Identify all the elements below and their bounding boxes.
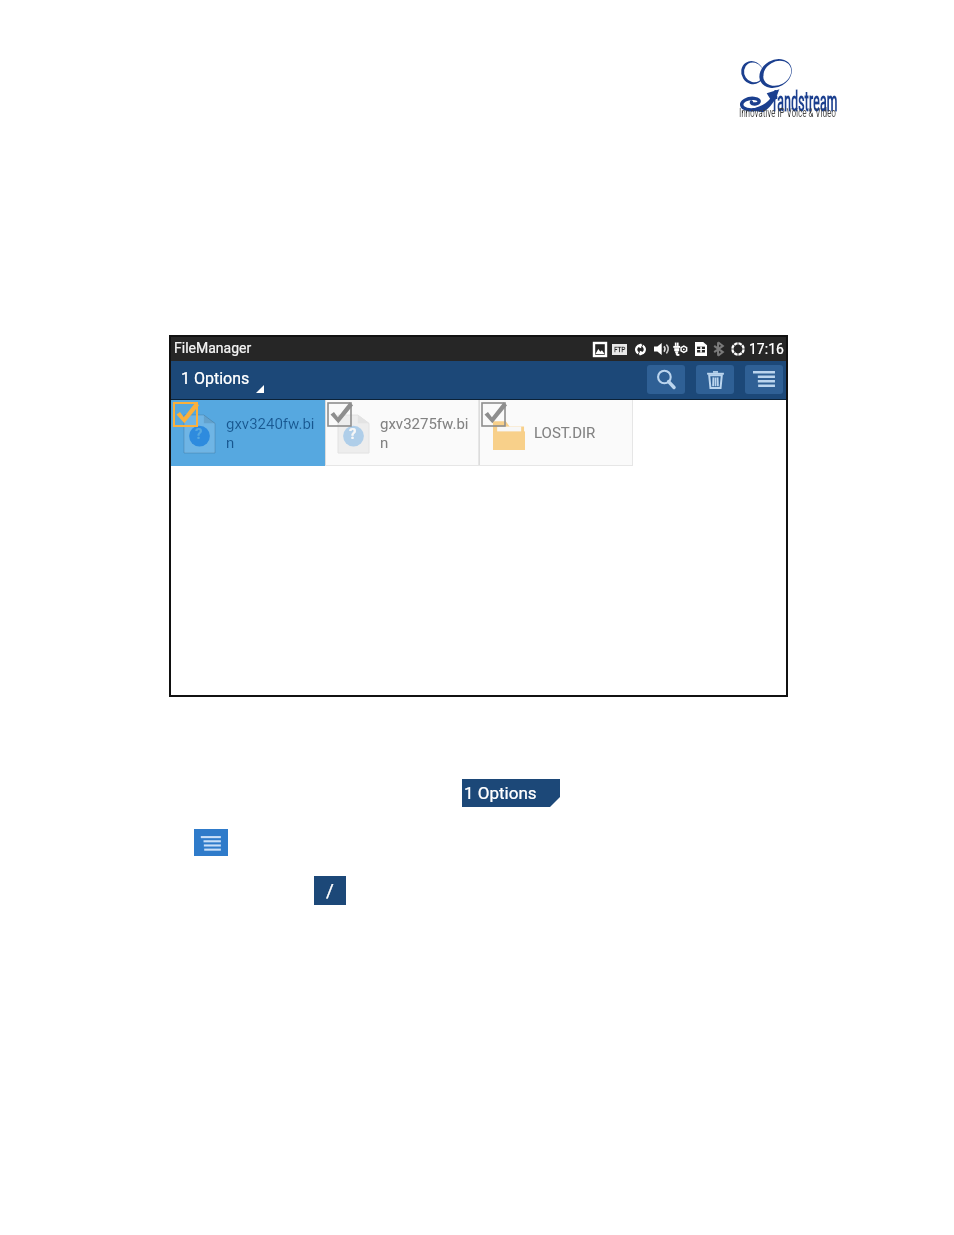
staticText: Innovative IP Voice & Video — [739, 105, 836, 120]
staticText: FTP — [614, 345, 626, 354]
button[interactable]: Search — [647, 365, 685, 394]
staticText: LOST.DIR — [534, 424, 626, 442]
button[interactable]: / — [314, 876, 346, 905]
staticText: 1 Options — [181, 369, 250, 388]
staticText: 17:16 — [749, 341, 784, 357]
staticText: ? — [349, 425, 357, 443]
button[interactable]: Sort — [745, 365, 783, 394]
staticText: 1 Options — [464, 783, 537, 803]
button[interactable]: ? — [325, 400, 479, 466]
button[interactable]: Menu — [194, 829, 228, 856]
staticText: gxv3240fw.bin — [226, 415, 318, 451]
staticText: ? — [195, 425, 203, 443]
button[interactable]: ? — [171, 400, 325, 466]
button[interactable]: LOST.DIR — [479, 400, 633, 466]
staticText: / — [326, 879, 334, 901]
staticText: gxv3275fw.bin — [380, 415, 472, 451]
button[interactable]: 1 Options — [171, 361, 271, 399]
staticText: FileManager — [174, 340, 252, 356]
button[interactable]: Delete — [696, 365, 734, 394]
button[interactable]: 1 Options — [462, 779, 560, 807]
staticText: randstream — [773, 86, 838, 118]
